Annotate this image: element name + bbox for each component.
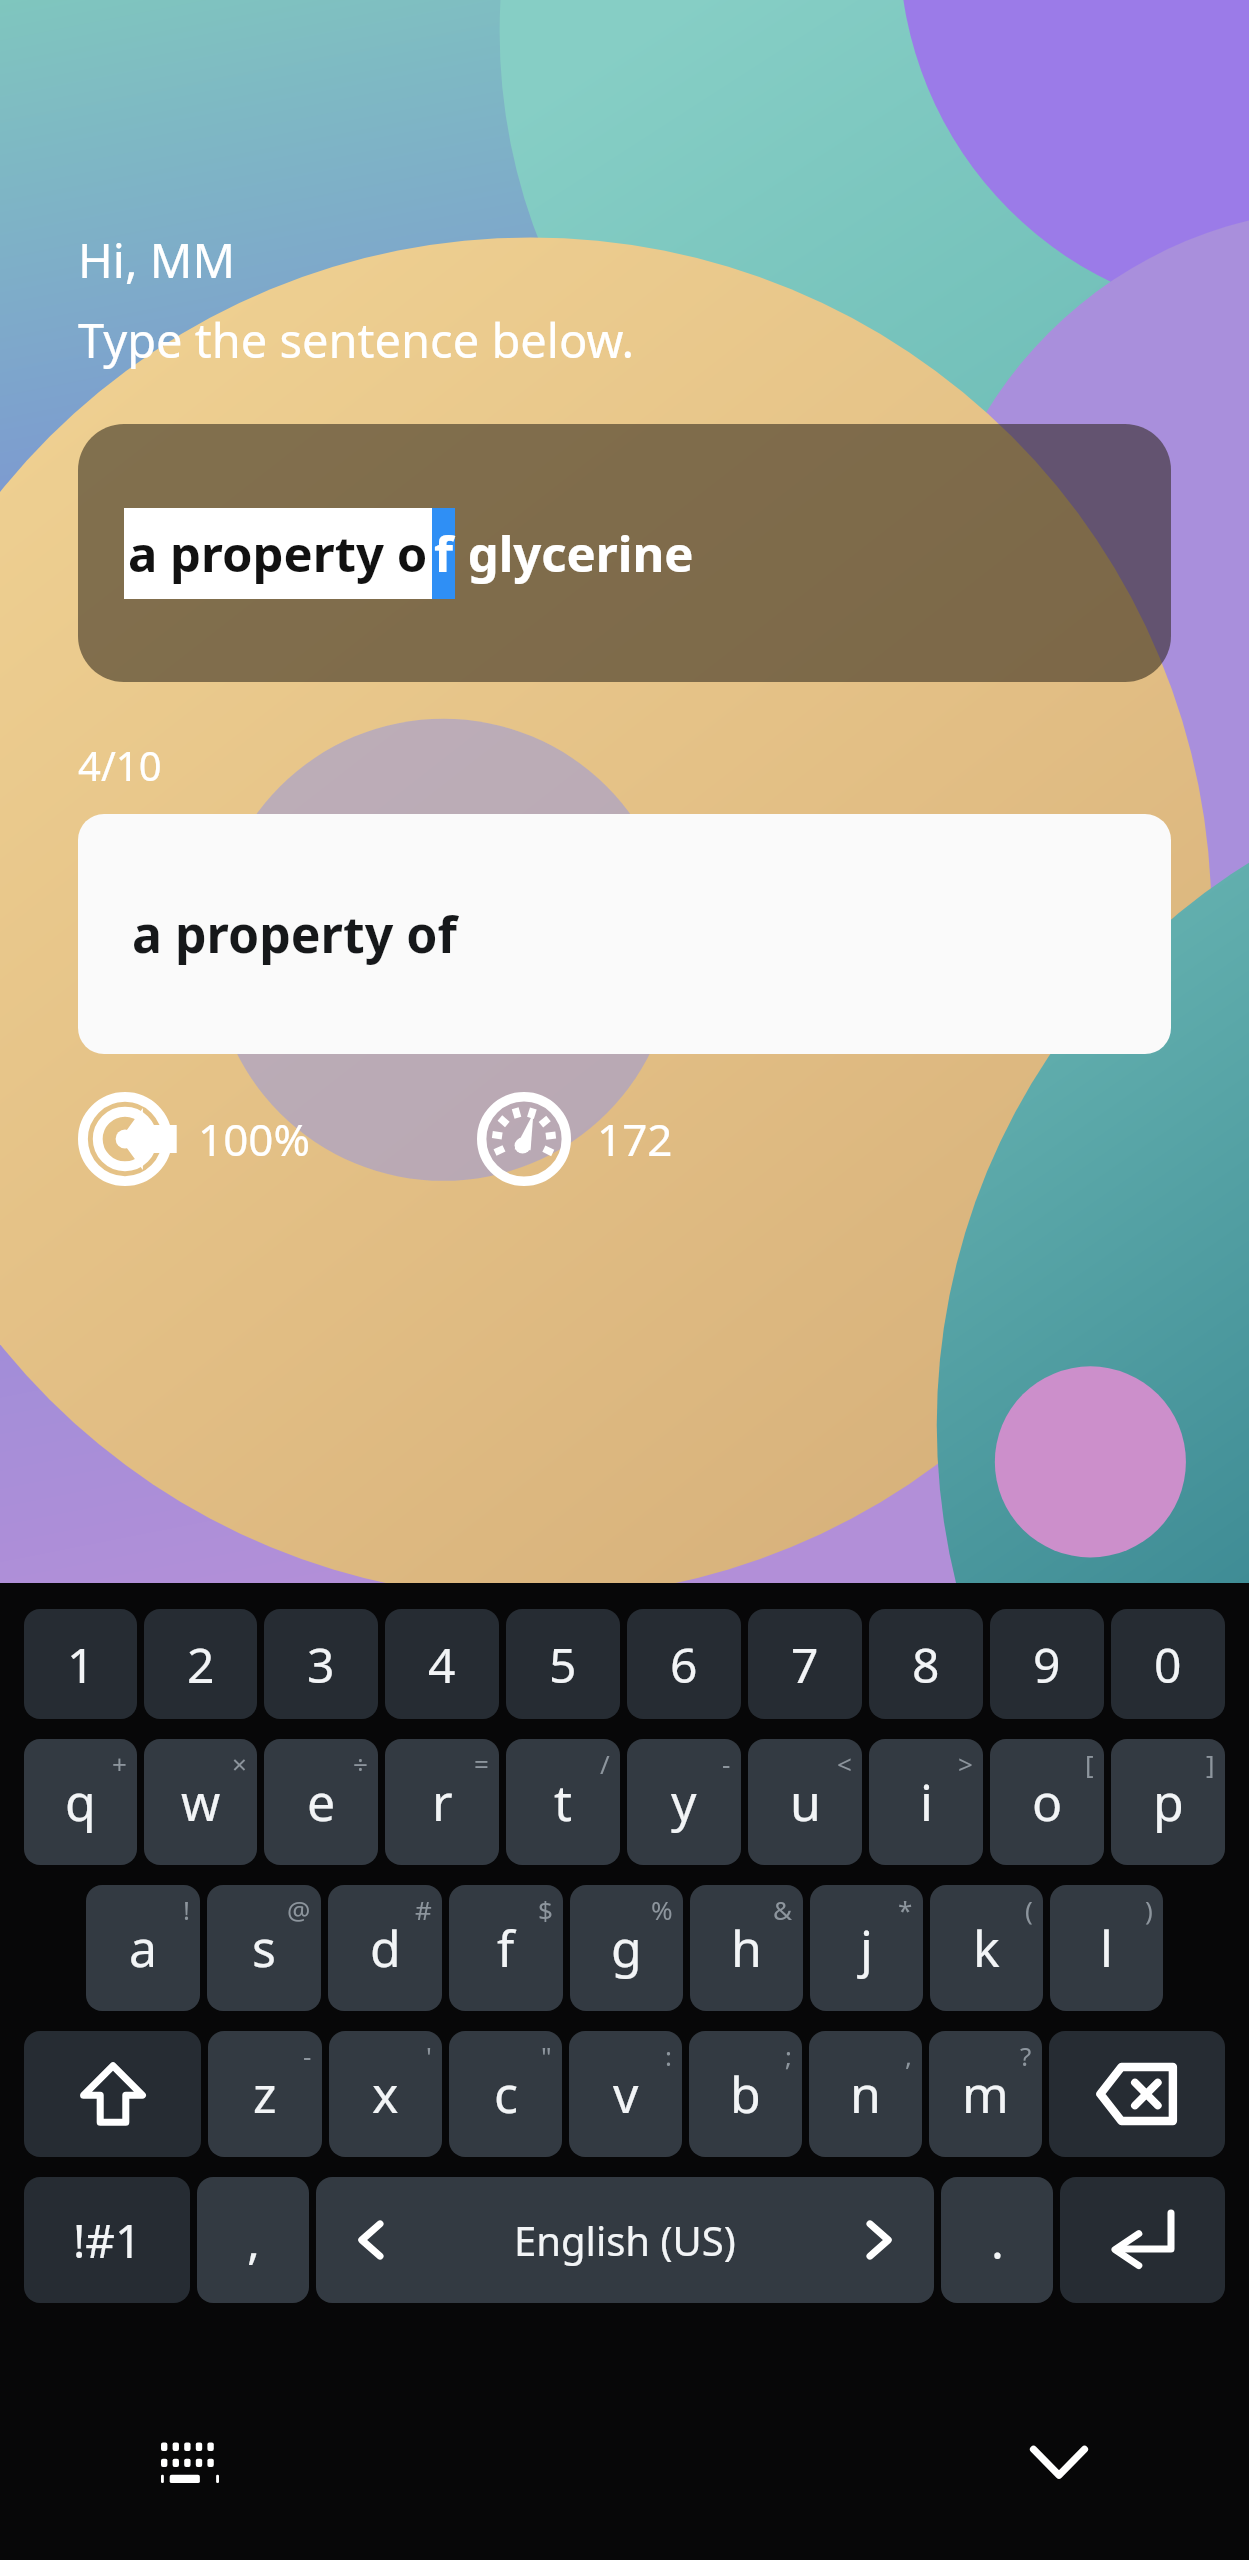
button[interactable]: 7 [748, 1609, 862, 1719]
button[interactable]: a property o [78, 424, 1171, 682]
button[interactable]: - [627, 1739, 741, 1865]
staticText: 8 [912, 1632, 940, 1697]
staticText: a property of [132, 900, 457, 968]
staticText: . [991, 2208, 1004, 2273]
button[interactable]: $ [449, 1885, 563, 2011]
button[interactable]: Accuracy 100 percent [78, 1092, 311, 1186]
button[interactable]: 3 [264, 1609, 378, 1719]
staticText: t [554, 1768, 573, 1836]
staticText: 7 [791, 1632, 819, 1697]
staticText: m [962, 2060, 1009, 2128]
button[interactable]: 9 [990, 1609, 1104, 1719]
staticText: l [1100, 1914, 1113, 1982]
staticText: & [773, 1892, 793, 1927]
button[interactable]: Enter [1060, 2177, 1225, 2303]
staticText: y [671, 1768, 697, 1836]
button[interactable]: , [809, 2031, 922, 2157]
staticText: g [611, 1914, 642, 1982]
staticText: , [905, 2038, 912, 2073]
staticText: i [920, 1768, 933, 1836]
staticText: # [415, 1892, 432, 1927]
button[interactable]: ; [689, 2031, 802, 2157]
staticText: ] [1206, 1746, 1215, 1781]
staticText: r [432, 1768, 453, 1836]
button[interactable]: @ [207, 1885, 321, 2011]
button[interactable]: 6 [627, 1609, 741, 1719]
staticText: × [232, 1746, 247, 1781]
staticText: x [372, 2060, 399, 2128]
button[interactable]: 4 [385, 1609, 499, 1719]
staticText: % [651, 1892, 673, 1927]
button[interactable]: ] [1111, 1739, 1225, 1865]
button[interactable]: !#1 [24, 2177, 190, 2303]
staticText: j [860, 1914, 873, 1982]
staticText: n [850, 2060, 881, 2128]
staticText: * [898, 1892, 913, 1927]
button[interactable]: 0 [1111, 1609, 1225, 1719]
staticText: 1 [67, 1632, 95, 1697]
button[interactable]: ? [929, 2031, 1042, 2157]
button[interactable]: / [506, 1739, 620, 1865]
button[interactable]: English (US) [316, 2177, 934, 2303]
staticText: English (US) [514, 2213, 736, 2267]
staticText: 6 [670, 1632, 698, 1697]
staticText: ? [1020, 2038, 1032, 2073]
button[interactable]: 1 [24, 1609, 137, 1719]
staticText: < [837, 1746, 852, 1781]
staticText: q [65, 1768, 96, 1836]
staticText: 3 [307, 1632, 335, 1697]
staticText: s [252, 1914, 276, 1982]
button[interactable]: 8 [869, 1609, 983, 1719]
staticText: , [247, 2208, 260, 2273]
staticText: Type the sentence below. [78, 308, 635, 372]
staticText: 172 [597, 1109, 673, 1169]
staticText: ' [426, 2038, 432, 2073]
button[interactable]: + [24, 1739, 137, 1865]
button[interactable]: > [869, 1739, 983, 1865]
button[interactable]: ! [86, 1885, 200, 2011]
button[interactable]: # [328, 1885, 442, 2011]
button[interactable]: × [144, 1739, 257, 1865]
staticText: ( [1025, 1892, 1033, 1927]
button[interactable]: ) [1050, 1885, 1163, 2011]
staticText: 4 [428, 1632, 456, 1697]
button[interactable]: Keyboard settings [148, 2419, 232, 2503]
button[interactable]: Backspace [1049, 2031, 1225, 2157]
staticText: @ [287, 1892, 311, 1927]
button[interactable]: Speed 172 words per minute [477, 1092, 673, 1186]
button[interactable]: Hide keyboard [1017, 2419, 1101, 2503]
button[interactable]: . [941, 2177, 1053, 2303]
button[interactable]: a property of [78, 814, 1171, 1054]
staticText: 4/10 [78, 738, 162, 792]
button[interactable]: * [810, 1885, 923, 2011]
button[interactable]: ( [930, 1885, 1043, 2011]
button[interactable]: [ [990, 1739, 1104, 1865]
staticText: e [307, 1768, 336, 1836]
staticText: f [497, 1914, 515, 1982]
button[interactable]: ' [329, 2031, 442, 2157]
staticText: 9 [1033, 1632, 1061, 1697]
staticText: c [494, 2060, 518, 2128]
button[interactable]: Shift [24, 2031, 201, 2157]
button[interactable]: % [570, 1885, 683, 2011]
staticText: : [665, 2038, 672, 2073]
button[interactable]: = [385, 1739, 499, 1865]
staticText: d [370, 1914, 401, 1982]
button[interactable]: < [748, 1739, 862, 1865]
button[interactable]: & [690, 1885, 803, 2011]
button[interactable]: 5 [506, 1609, 620, 1719]
button[interactable]: " [449, 2031, 562, 2157]
staticText: ; [785, 2038, 792, 2073]
staticText: a [129, 1914, 158, 1982]
button[interactable]: - [208, 2031, 322, 2157]
staticText: b [730, 2060, 761, 2128]
staticText: ÷ [353, 1746, 368, 1781]
button[interactable]: ÷ [264, 1739, 378, 1865]
staticText: 0 [1154, 1632, 1182, 1697]
button[interactable]: 2 [144, 1609, 257, 1719]
staticText: f [434, 520, 453, 587]
staticText: ) [1145, 1892, 1153, 1927]
button[interactable]: : [569, 2031, 682, 2157]
button[interactable]: , [197, 2177, 309, 2303]
staticText: 2 [187, 1632, 215, 1697]
